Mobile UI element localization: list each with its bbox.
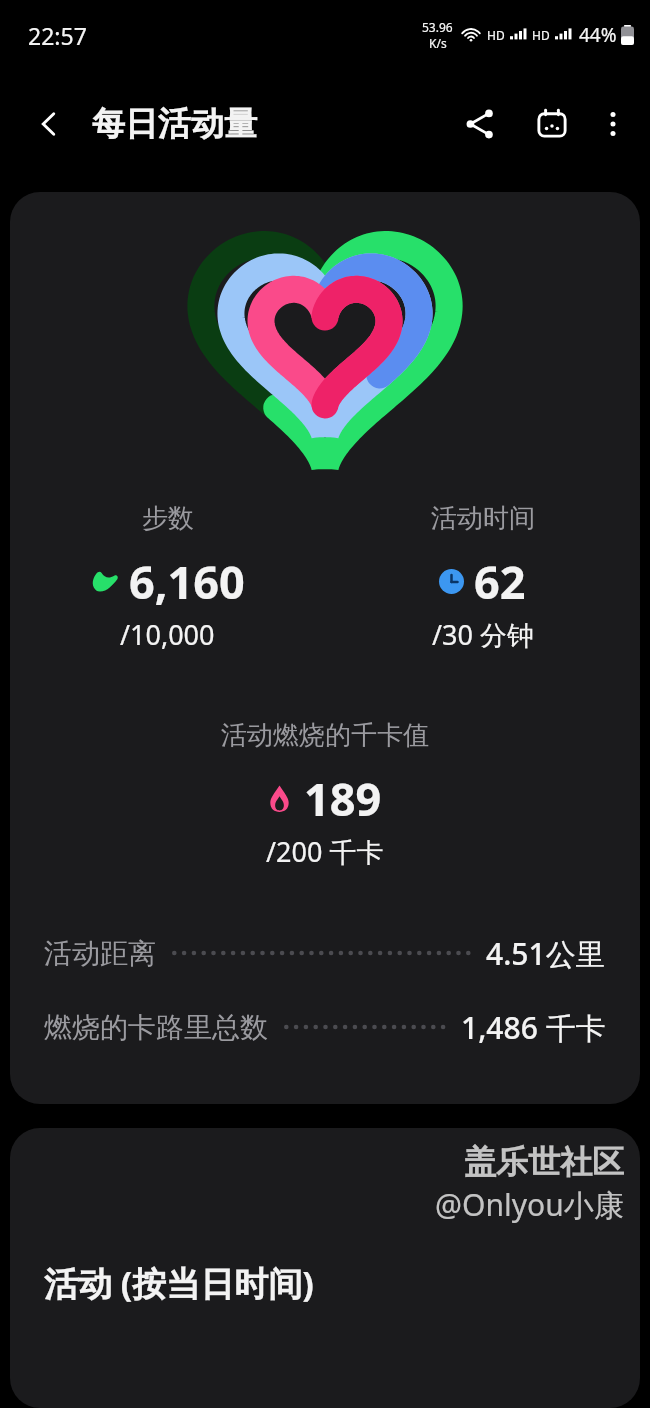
staticText: 活动距离 (44, 936, 156, 971)
button[interactable]: 燃烧的卡路里总数 (44, 990, 606, 1064)
staticText: 活动时间 (431, 502, 535, 535)
button[interactable]: More options (588, 99, 638, 149)
button[interactable]: 活动 (按当日时间) (10, 1128, 640, 1408)
button[interactable]: Back (22, 97, 76, 151)
staticText: 4.51公里 (486, 933, 606, 974)
staticText: 1,486 千卡 (461, 1007, 606, 1048)
staticText: 189 (304, 768, 382, 829)
button[interactable]: 活动距离 (44, 916, 606, 990)
staticText: HD (487, 27, 505, 43)
button[interactable]: 步数 (10, 192, 640, 1104)
button[interactable]: 活动时间 (325, 502, 640, 653)
button[interactable]: Calendar (524, 96, 580, 152)
staticText: 燃烧的卡路里总数 (44, 1010, 268, 1045)
staticText: 每日活动量 (92, 103, 257, 145)
staticText: /200 千卡 (266, 833, 384, 870)
staticText: /10,000 (120, 616, 215, 653)
staticText: 活动燃烧的千卡值 (221, 719, 429, 752)
button[interactable]: 活动燃烧的千卡值 (10, 719, 640, 870)
button[interactable]: Share (452, 96, 508, 152)
button[interactable]: 步数 (10, 502, 325, 653)
staticText: 盖乐世社区 (464, 1142, 624, 1182)
staticText: HD (532, 27, 550, 43)
staticText: K/s (429, 35, 447, 51)
staticText: @Onlyou小康 (435, 1184, 624, 1225)
staticText: 6,160 (129, 551, 245, 612)
staticText: 53.96 (422, 19, 453, 35)
staticText: 活动 (按当日时间) (44, 1260, 314, 1306)
staticText: 22:57 (28, 20, 87, 51)
staticText: 62 (474, 551, 526, 612)
staticText: 步数 (142, 502, 194, 535)
staticText: 44% (579, 22, 617, 48)
staticText: /30 分钟 (432, 616, 534, 653)
